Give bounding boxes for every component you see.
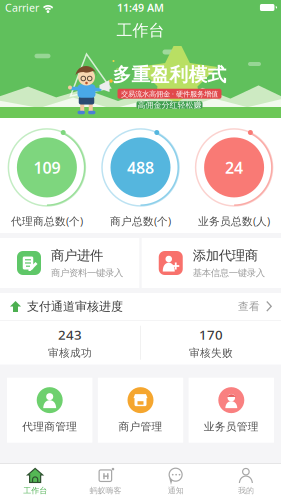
button[interactable]: 蚂蚁嗨客 (70, 464, 140, 500)
staticText: 支付通道审核进度 (27, 299, 123, 314)
button[interactable]: 通知 (140, 464, 211, 500)
staticText: 11:49 AM (117, 0, 164, 15)
staticText: 商户进件 (51, 247, 103, 264)
staticText: 工作台 (23, 486, 47, 495)
staticText: 109 (33, 157, 60, 178)
staticText: 24 (225, 157, 243, 178)
staticText: 审核成功 (48, 346, 92, 360)
staticText: 代理商总数(个) (11, 214, 83, 228)
staticText: 通知 (168, 486, 184, 495)
staticText: 商户总数(个) (110, 214, 171, 228)
staticText: 488 (127, 157, 154, 178)
button[interactable]: 工作台 (0, 464, 70, 500)
staticText: 业务员总数(人) (198, 214, 270, 228)
staticText: 添加代理商 (193, 247, 258, 264)
staticText: 我的 (238, 486, 254, 495)
staticText: 170 (199, 326, 223, 343)
staticText: 查看 (238, 300, 260, 313)
staticText: 交易流水高佣金 · 硬件服务增值 (121, 89, 218, 99)
staticText: 商户资料一键录入 (51, 267, 123, 279)
staticText: 业务员管理 (204, 420, 259, 433)
button[interactable]: 业务员管理 (189, 378, 274, 443)
button[interactable]: 代理商管理 (7, 378, 92, 443)
button[interactable]: 我的 (211, 464, 281, 500)
staticText: 蚂蚁嗨客 (89, 486, 121, 495)
staticText: 商户管理 (118, 420, 162, 433)
staticText: 多重盈利模式 (112, 63, 226, 86)
button[interactable]: 商户进件 (0, 238, 139, 288)
button[interactable]: 商户管理 (98, 378, 183, 443)
staticText: Carrier (5, 0, 39, 15)
staticText: 审核失败 (189, 346, 233, 360)
button[interactable]: 支付通道审核进度 (0, 293, 281, 320)
staticText: 基本信息一键录入 (193, 267, 265, 279)
button[interactable]: 添加代理商 (142, 238, 281, 288)
staticText: 代理商管理 (22, 420, 77, 433)
staticText: 高佣金分红轻松赚 (137, 100, 201, 110)
staticText: 243 (58, 326, 82, 343)
staticText: 工作台 (116, 21, 164, 40)
